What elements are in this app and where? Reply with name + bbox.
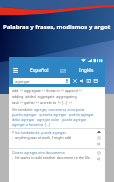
button[interactable]: Clear (71, 77, 78, 84)
staticText: debo agregar agregar valor puede agregar (12, 117, 87, 122)
button[interactable]: Voice search (64, 78, 70, 84)
button[interactable]: Share (92, 77, 99, 84)
staticText: [...] (62, 100, 68, 105)
staticText: Quiero agregar otro documento (12, 150, 65, 155)
button[interactable]: Favorite (96, 135, 102, 141)
button[interactable]: Open navigation menu (9, 64, 21, 76)
staticText: Español (30, 67, 49, 74)
staticText: puedo agregar quisiera agregar podría ag… (12, 112, 94, 117)
staticText: agregar (15, 79, 30, 84)
button[interactable]: Favorite (96, 150, 102, 156)
staticText: agregar a favoritos [...] (12, 122, 51, 127)
button[interactable]: Copy (85, 77, 92, 84)
staticText: Ver también: (12, 107, 33, 112)
staticText: Y los fundadores, puede agregar… (12, 130, 68, 135)
staticText: - (12, 135, 15, 140)
staticText: task (12, 100, 19, 105)
staticText: adding added aggregate aggregating (12, 94, 77, 99)
button[interactable]: Español (21, 64, 57, 76)
staticText: Palabras y frases, modismos y argot (3, 23, 111, 31)
button[interactable]: agregar (13, 78, 70, 84)
staticText: - (12, 155, 15, 160)
button[interactable]: Listen (96, 156, 102, 162)
staticText: gather (24, 100, 35, 105)
staticText: anything was at work, I might add (15, 135, 71, 140)
button[interactable]: Y los fundadores, puede agregar… (9, 129, 105, 148)
staticText: throw in (46, 88, 60, 93)
staticText: Inglés (79, 67, 94, 74)
button[interactable]: Listen (78, 77, 85, 84)
staticText: append (65, 88, 78, 93)
button[interactable]: Quiero agregar otro documento (9, 149, 105, 163)
button[interactable]: Listen (96, 141, 102, 147)
staticText: He wants to add another document to the … (15, 155, 90, 160)
staticText: agregar, concentrar, incorporar (34, 107, 85, 112)
staticText: add (12, 88, 19, 93)
staticText: aggregate (24, 88, 41, 93)
button[interactable]: Inglés (68, 64, 105, 76)
staticText: accrete to (40, 100, 57, 105)
button[interactable]: Swap languages (57, 65, 68, 76)
